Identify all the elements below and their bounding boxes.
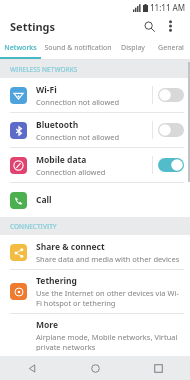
button[interactable]: Call [0,183,190,217]
staticText: General [158,43,184,53]
staticText: Networks [4,43,37,53]
staticText: Connection not allowed [36,97,120,107]
button[interactable]: Home [64,356,127,380]
button[interactable]: More options [160,16,180,36]
button[interactable]: General [152,38,190,57]
button[interactable]: Recents [127,356,190,380]
staticText: Wi-Fi [36,84,57,96]
staticText: Connection allowed [36,167,106,177]
staticText: Tethering [36,275,77,287]
staticText: WIRELESS NETWORKS [10,65,78,74]
button[interactable]: Toggle [158,158,184,172]
button[interactable]: More [0,314,190,356]
staticText: Call [36,194,52,206]
button[interactable]: Bluetooth [0,113,190,147]
button[interactable]: Wi-Fi [0,78,190,112]
staticText: 11:11 AM [150,2,186,13]
staticText: Bluetooth [36,119,79,131]
staticText: Mobile data [36,154,87,166]
staticText: Share data and media with other devices [36,254,180,264]
button[interactable]: Networks [0,38,41,57]
button[interactable]: Tethering [0,270,190,313]
button[interactable]: Toggle [158,123,184,137]
button[interactable]: Search [138,15,160,37]
button[interactable]: Share & connect [0,235,190,269]
button[interactable]: Toggle [158,88,184,102]
staticText: Connection not allowed [36,132,120,142]
staticText: Display [121,43,145,53]
staticText: Share & connect [36,241,105,253]
button[interactable]: Mobile data [0,148,190,182]
staticText: CONNECTIVITY [10,222,57,231]
staticText: More [36,319,59,331]
staticText: Settings [10,19,56,34]
button[interactable]: Sound & notification [41,38,114,57]
button[interactable]: Display [114,38,152,57]
staticText: Use the Internet on other devices via Wi… [36,288,184,308]
staticText: Sound & notification [44,43,112,53]
staticText: Airplane mode, Mobile networks, Virtual … [36,332,184,351]
button[interactable]: Back [0,356,64,380]
